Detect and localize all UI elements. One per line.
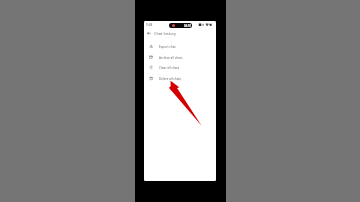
button[interactable]: Clear all chats bbox=[144, 62, 216, 73]
button[interactable]: Back bbox=[145, 29, 153, 37]
button[interactable]: Delete all chats bbox=[144, 73, 216, 84]
staticText: Chat history bbox=[154, 31, 177, 36]
button[interactable]: Archive all chats bbox=[144, 52, 216, 63]
staticText: Delete all chats bbox=[159, 77, 182, 81]
staticText: 9:48 bbox=[146, 23, 153, 27]
staticText: Clear all chats bbox=[159, 66, 180, 70]
staticText: Export chat bbox=[159, 45, 176, 49]
staticText: Archive all chats bbox=[159, 56, 183, 60]
button[interactable]: Export chat bbox=[144, 41, 216, 52]
staticText: 04:18 bbox=[184, 24, 191, 28]
